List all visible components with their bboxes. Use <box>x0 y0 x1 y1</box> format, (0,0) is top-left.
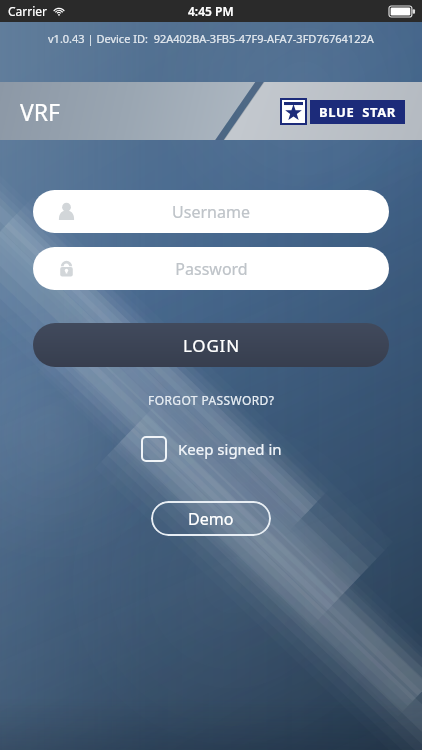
staticText: FORGOT PASSWORD? <box>148 392 275 408</box>
staticText: v1.0.43 | Device ID: 92A402BA-3FB5-47F9-… <box>48 31 374 46</box>
button[interactable]: Keep signed in <box>137 432 286 466</box>
button[interactable]: FORGOT PASSWORD? <box>140 389 283 411</box>
staticText: Username <box>172 201 250 223</box>
button[interactable]: Password <box>33 247 389 290</box>
button[interactable]: Demo <box>151 501 271 536</box>
button[interactable]: LOGIN <box>33 323 389 367</box>
staticText: LOGIN <box>183 334 240 357</box>
staticText: BLUE STAR <box>319 103 396 121</box>
staticText: Demo <box>188 508 234 530</box>
staticText: Keep signed in <box>178 439 282 459</box>
button[interactable]: Username <box>33 190 389 233</box>
staticText: VRF <box>20 96 61 127</box>
staticText: Password <box>175 258 248 280</box>
staticText: 4:45 PM <box>188 3 234 19</box>
staticText: Carrier <box>8 3 48 19</box>
other: Blue Star logo <box>280 98 405 125</box>
